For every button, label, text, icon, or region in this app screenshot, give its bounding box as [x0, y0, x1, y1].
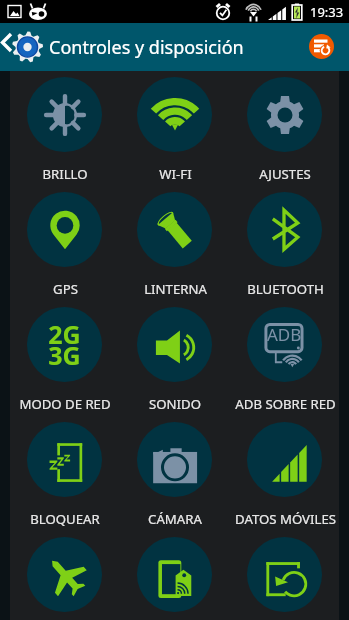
staticText: WI-FI [159, 165, 192, 183]
staticText: BRILLO [42, 165, 88, 183]
button[interactable]: BLOQUEAR [27, 422, 102, 497]
staticText: MODO DE RED [19, 395, 111, 413]
button[interactable]: SONIDO [137, 307, 212, 382]
button[interactable]: MODO DE RED [27, 307, 102, 382]
button[interactable]: ANCLAJE [137, 537, 212, 612]
button[interactable]: AJUSTES [247, 77, 322, 152]
button[interactable]: BLUETOOTH [247, 192, 322, 267]
button[interactable]: CÁMARA [137, 422, 212, 497]
button[interactable]: ROTACIÓN [247, 537, 322, 612]
button[interactable]: BRILLO [27, 77, 102, 152]
staticText: DATOS MÓVILES [235, 510, 336, 528]
button[interactable]: MODO AVIÓN [27, 537, 102, 612]
button[interactable]: GPS [27, 192, 102, 267]
staticText: Controles y disposición [49, 35, 244, 60]
staticText: LINTERNA [144, 280, 207, 298]
button[interactable]: DATOS MÓVILES [247, 422, 322, 497]
staticText: BLOQUEAR [30, 510, 100, 528]
staticText: ADB [267, 323, 302, 346]
staticText: 2G 3G [48, 317, 81, 372]
staticText: CÁMARA [148, 510, 202, 528]
staticText: ADB SOBRE RED [235, 395, 336, 413]
button[interactable]: Back [0, 23, 44, 71]
button[interactable]: Reset settings [309, 34, 334, 59]
staticText: 19:33 [310, 3, 344, 21]
button[interactable]: LINTERNA [137, 192, 212, 267]
staticText: GPS [53, 280, 78, 298]
button[interactable]: ADB SOBRE RED [247, 307, 322, 382]
staticText: SONIDO [149, 395, 201, 413]
staticText: BLUETOOTH [247, 280, 324, 298]
button[interactable]: WI-FI [137, 77, 212, 152]
staticText: AJUSTES [259, 165, 311, 183]
